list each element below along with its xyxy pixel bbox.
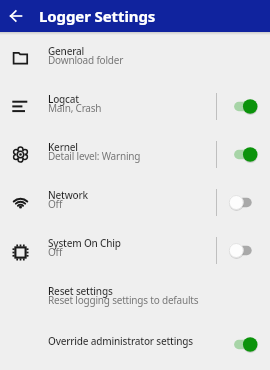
button[interactable]: [229, 195, 258, 210]
button[interactable]: [229, 99, 258, 114]
button[interactable]: Network: [0, 176, 270, 224]
button[interactable]: [229, 243, 258, 258]
staticText: Network: [48, 188, 88, 202]
button[interactable]: Override administrator settings: [0, 320, 270, 368]
staticText: Main, Crash: [48, 101, 102, 115]
staticText: Off: [48, 197, 63, 211]
button[interactable]: General: [0, 32, 270, 80]
staticText: Logger Settings: [39, 6, 156, 26]
staticText: Kernel: [48, 140, 78, 154]
button[interactable]: Logcat: [0, 80, 270, 128]
staticText: Detail level: Warning: [48, 149, 141, 163]
staticText: Reset logging settings to defaults: [48, 293, 199, 307]
button[interactable]: [229, 337, 258, 352]
staticText: Download folder: [48, 53, 124, 67]
button[interactable]: System On Chip: [0, 224, 270, 272]
staticText: Reset settings: [48, 284, 113, 298]
button[interactable]: [0, 0, 32, 32]
button[interactable]: [229, 147, 258, 162]
button[interactable]: Kernel: [0, 128, 270, 176]
staticText: Override administrator settings: [48, 334, 193, 348]
staticText: System On Chip: [48, 236, 121, 250]
staticText: Logcat: [48, 92, 79, 106]
staticText: General: [48, 44, 85, 58]
staticText: Off: [48, 245, 63, 259]
button[interactable]: Reset settings: [0, 272, 270, 320]
